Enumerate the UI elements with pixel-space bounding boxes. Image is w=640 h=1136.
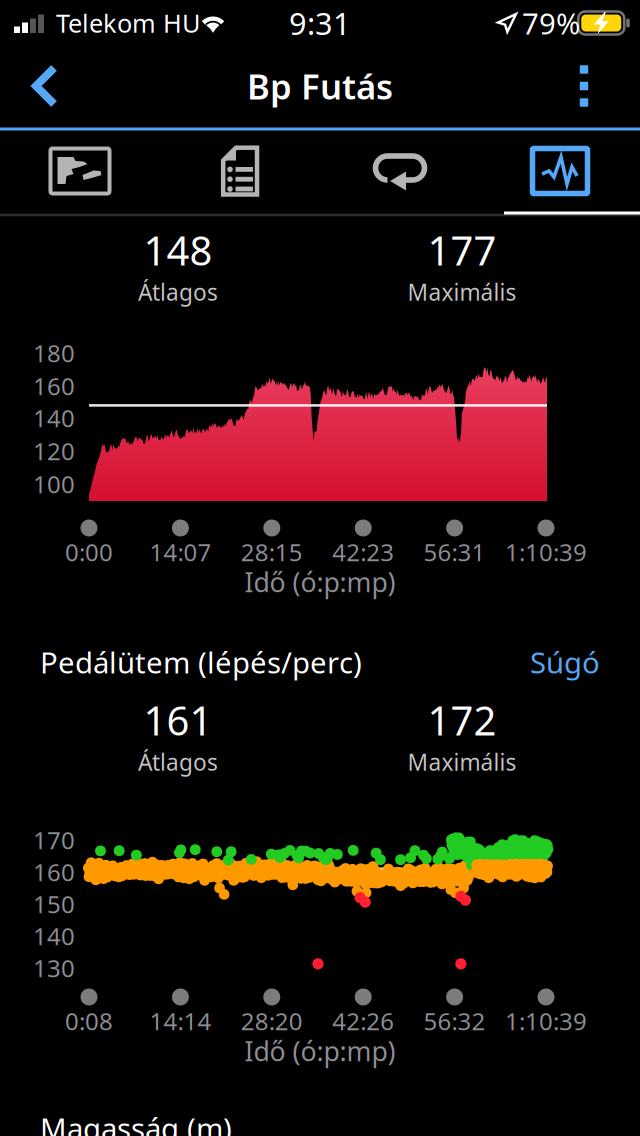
staticText: Maximális [407, 747, 516, 777]
button[interactable]: Charts [480, 131, 640, 211]
staticText: 56:31 [424, 536, 486, 568]
button[interactable]: More options [539, 46, 629, 126]
staticText: 150 [33, 888, 75, 920]
staticText: 170 [33, 824, 75, 856]
button[interactable]: Back [0, 46, 90, 126]
staticText: 42:26 [332, 1005, 394, 1037]
staticText: 130 [33, 952, 75, 984]
staticText: 180 [33, 337, 75, 369]
staticText: Idő (ó:p:mp) [244, 1033, 395, 1069]
staticText: 1:10:39 [505, 536, 587, 568]
staticText: 161 [143, 693, 212, 746]
staticText: 9:31 [289, 3, 351, 43]
button[interactable]: Súgó [490, 636, 600, 688]
staticText: 140 [33, 920, 75, 952]
button[interactable]: Laps [320, 131, 480, 211]
staticText: 28:20 [241, 1005, 303, 1037]
staticText: 140 [33, 402, 75, 434]
staticText: 172 [427, 693, 496, 746]
staticText: Maximális [407, 277, 516, 307]
staticText: 148 [143, 223, 212, 276]
staticText: 160 [33, 856, 75, 888]
staticText: Súgó [530, 642, 600, 681]
staticText: 100 [33, 468, 75, 500]
staticText: 0:00 [65, 536, 113, 568]
button[interactable]: Summary [160, 131, 320, 211]
staticText: 0:08 [65, 1005, 113, 1037]
staticText: 14:07 [149, 536, 211, 568]
staticText: 56:32 [424, 1005, 486, 1037]
staticText: Magasság (m) [40, 1108, 232, 1136]
staticText: Átlagos [138, 277, 218, 307]
staticText: 120 [33, 435, 75, 467]
staticText: 160 [33, 370, 75, 402]
staticText: 28:15 [241, 536, 303, 568]
staticText: 42:23 [332, 536, 394, 568]
staticText: Idő (ó:p:mp) [244, 564, 395, 600]
staticText: Telekom HU [56, 6, 201, 40]
staticText: 14:14 [149, 1005, 211, 1037]
button[interactable]: Map [0, 131, 160, 211]
staticText: Bp Futás [247, 63, 393, 109]
staticText: 1:10:39 [505, 1005, 587, 1037]
staticText: 177 [427, 223, 496, 276]
staticText: 79% [522, 3, 580, 42]
staticText: Pedálütem (lépés/perc) [40, 642, 362, 681]
staticText: Átlagos [138, 747, 218, 777]
